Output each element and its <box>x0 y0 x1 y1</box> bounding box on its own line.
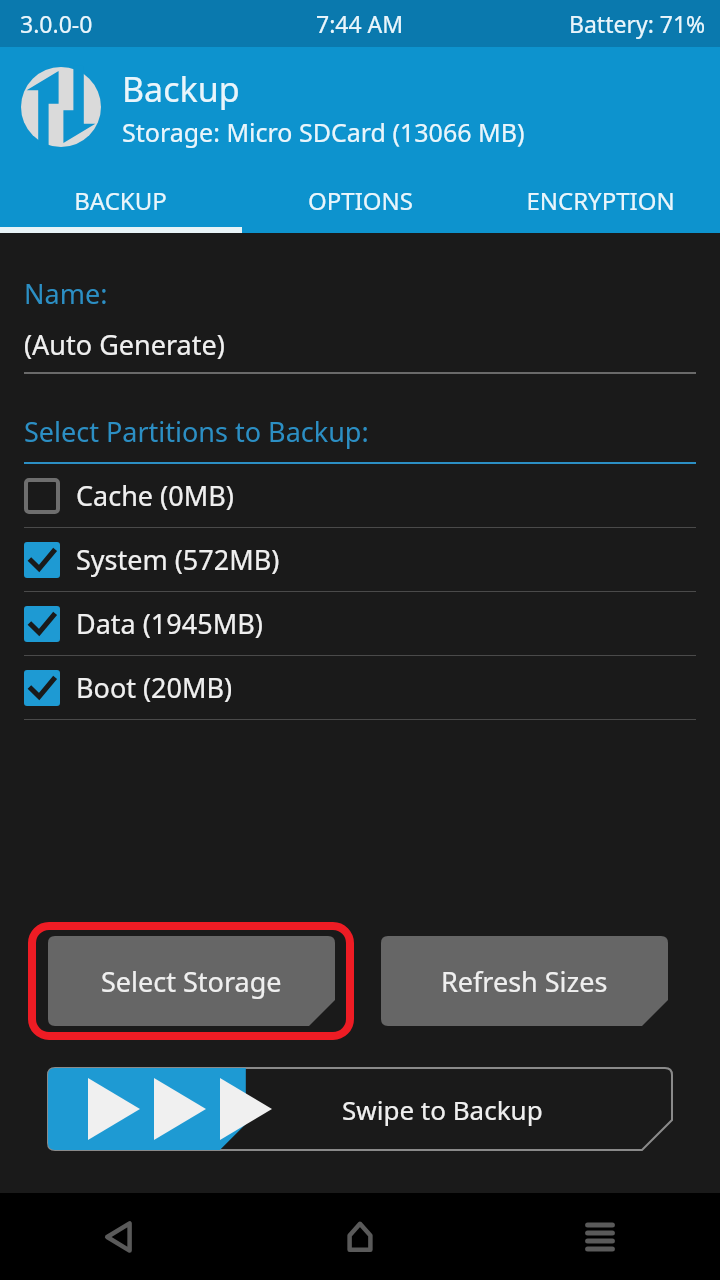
staticText: Battery: 71% <box>569 8 706 39</box>
staticText: Storage: Micro SDCard (13066 MB) <box>122 115 525 149</box>
button[interactable]: ENCRYPTION <box>480 167 720 233</box>
staticText: Boot (20MB) <box>76 669 233 706</box>
button[interactable]: Refresh Sizes <box>381 936 668 1026</box>
button[interactable]: Select Storage <box>48 936 335 1026</box>
button[interactable]: BACKUP <box>0 167 240 233</box>
staticText: Data (1945MB) <box>76 605 263 642</box>
button[interactable]: Data (1945MB) <box>0 592 720 656</box>
staticText: ENCRYPTION <box>526 184 675 217</box>
staticText: (Auto Generate) <box>24 326 225 363</box>
staticText: Cache (0MB) <box>76 477 234 514</box>
button[interactable]: OPTIONS <box>240 167 480 233</box>
staticText: Select Partitions to Backup: <box>24 413 369 450</box>
button[interactable]: Boot (20MB) <box>0 656 720 720</box>
staticText: Select Storage <box>101 963 282 1000</box>
button[interactable]: Menu <box>480 1193 720 1280</box>
button[interactable]: System (572MB) <box>0 528 720 592</box>
button[interactable]: Cache (0MB) <box>0 464 720 528</box>
staticText: 7:44 AM <box>316 8 404 39</box>
staticText: Refresh Sizes <box>441 963 608 1000</box>
staticText: Name: <box>24 275 108 312</box>
staticText: Swipe to Backup <box>342 1092 543 1127</box>
staticText: System (572MB) <box>76 541 280 578</box>
staticText: Backup <box>122 66 240 112</box>
button[interactable]: Back <box>0 1193 240 1280</box>
staticText: OPTIONS <box>308 184 413 217</box>
button[interactable]: Home <box>240 1193 480 1280</box>
button[interactable]: Swipe to Backup <box>48 1068 672 1150</box>
staticText: 3.0.0-0 <box>20 8 93 39</box>
staticText: BACKUP <box>74 184 167 217</box>
